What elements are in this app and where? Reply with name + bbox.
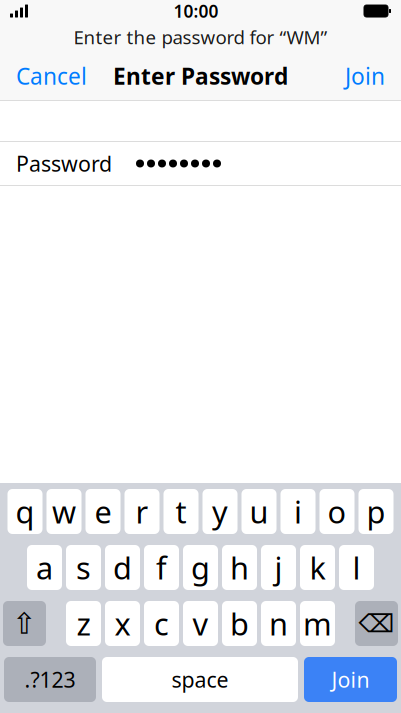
button[interactable]: Cancel bbox=[0, 52, 103, 100]
staticText: ⌫ bbox=[358, 609, 394, 638]
staticText: y bbox=[212, 491, 228, 532]
staticText: o bbox=[327, 491, 346, 532]
button[interactable]: a bbox=[27, 545, 62, 590]
staticText: Join bbox=[345, 61, 385, 91]
button[interactable]: u bbox=[241, 489, 276, 534]
staticText: v bbox=[192, 603, 208, 644]
staticText: e bbox=[94, 491, 111, 532]
button[interactable]: m bbox=[300, 601, 335, 646]
button[interactable]: y bbox=[202, 489, 237, 534]
button[interactable]: k bbox=[300, 545, 335, 590]
staticText: x bbox=[114, 603, 130, 644]
staticText: 10:00 bbox=[173, 0, 218, 22]
staticText: w bbox=[52, 491, 76, 532]
button[interactable]: h bbox=[222, 545, 257, 590]
button[interactable]: x bbox=[105, 601, 140, 646]
staticText: c bbox=[154, 603, 169, 644]
staticText: b bbox=[230, 603, 249, 644]
staticText: g bbox=[191, 547, 210, 588]
button[interactable]: Password bbox=[0, 142, 401, 185]
staticText: h bbox=[230, 547, 249, 588]
button[interactable]: z bbox=[66, 601, 101, 646]
button[interactable]: Delete bbox=[355, 601, 398, 646]
staticText: ⇧ bbox=[12, 607, 37, 640]
button[interactable]: l bbox=[339, 545, 374, 590]
button[interactable]: g bbox=[183, 545, 218, 590]
button[interactable]: Join bbox=[304, 657, 397, 702]
staticText: n bbox=[269, 603, 288, 644]
button[interactable]: i bbox=[280, 489, 315, 534]
button[interactable]: j bbox=[261, 545, 296, 590]
staticText: Cancel bbox=[16, 61, 87, 91]
button[interactable]: c bbox=[144, 601, 179, 646]
button[interactable]: f bbox=[144, 545, 179, 590]
button[interactable]: q bbox=[7, 489, 42, 534]
staticText: u bbox=[249, 491, 268, 532]
staticText: Enter Password bbox=[113, 61, 288, 91]
button[interactable]: space bbox=[102, 657, 298, 702]
button[interactable]: s bbox=[66, 545, 101, 590]
staticText: Enter the password for “WM” bbox=[73, 25, 327, 49]
button[interactable]: p bbox=[358, 489, 393, 534]
staticText: q bbox=[15, 491, 34, 532]
staticText: i bbox=[294, 491, 302, 532]
staticText: k bbox=[309, 547, 325, 588]
staticText: l bbox=[352, 547, 360, 588]
button[interactable]: o bbox=[319, 489, 354, 534]
button[interactable]: Join bbox=[329, 52, 401, 100]
staticText: t bbox=[175, 491, 186, 532]
button[interactable]: b bbox=[222, 601, 257, 646]
staticText: f bbox=[156, 547, 167, 588]
button[interactable]: v bbox=[183, 601, 218, 646]
staticText: s bbox=[76, 547, 91, 588]
button[interactable]: t bbox=[163, 489, 198, 534]
staticText: p bbox=[366, 491, 385, 532]
staticText: j bbox=[274, 547, 282, 588]
staticText: Password bbox=[16, 149, 112, 178]
button[interactable]: e bbox=[85, 489, 120, 534]
button[interactable]: .?123 bbox=[4, 657, 96, 702]
button[interactable]: n bbox=[261, 601, 296, 646]
staticText: .?123 bbox=[24, 665, 75, 694]
button[interactable]: d bbox=[105, 545, 140, 590]
button[interactable]: Shift bbox=[3, 601, 46, 646]
staticText: a bbox=[36, 547, 53, 588]
staticText: z bbox=[76, 603, 90, 644]
staticText: Join bbox=[331, 665, 369, 694]
staticText: space bbox=[171, 665, 228, 694]
staticText: m bbox=[303, 603, 332, 644]
staticText: d bbox=[113, 547, 132, 588]
button[interactable]: w bbox=[46, 489, 81, 534]
staticText: r bbox=[135, 491, 148, 532]
button[interactable]: r bbox=[124, 489, 159, 534]
